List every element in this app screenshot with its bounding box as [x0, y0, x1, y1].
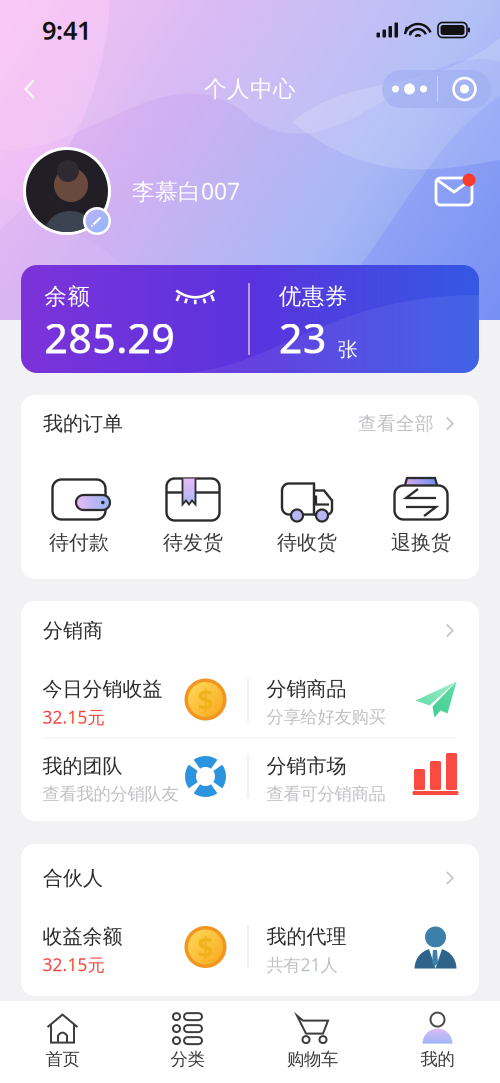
button[interactable]: Back — [8, 67, 52, 111]
staticText: 待付款 — [49, 530, 109, 555]
button[interactable]: 优惠券 — [250, 265, 478, 373]
button[interactable]: 余额 — [22, 265, 248, 373]
staticText: 张 — [338, 337, 358, 362]
staticText: 今日分销收益 — [42, 677, 162, 701]
staticText: 余额 — [44, 283, 90, 310]
button[interactable]: 收益余额 — [20, 909, 247, 985]
staticText: 分类 — [170, 1049, 204, 1070]
staticText: 分销商 — [43, 618, 103, 643]
staticText: 待收货 — [277, 530, 337, 555]
button[interactable]: 分销商品 — [248, 661, 479, 737]
staticText: 我的订单 — [43, 411, 123, 436]
staticText: 查看全部 — [358, 412, 434, 435]
staticText: 购物车 — [287, 1049, 338, 1070]
staticText: 共有21人 — [266, 953, 337, 976]
button[interactable]: 分类 — [125, 1001, 250, 1083]
button[interactable]: 我的代理 — [248, 909, 479, 985]
button[interactable]: 购物车 — [250, 1001, 375, 1083]
staticText: 首页 — [45, 1049, 79, 1070]
staticText: 分享给好友购买 — [266, 706, 385, 728]
button[interactable]: 分销市场 — [248, 738, 479, 814]
staticText: 退换货 — [391, 530, 451, 555]
staticText: 合伙人 — [43, 866, 103, 890]
staticText: 待发货 — [163, 530, 223, 555]
staticText: 23 — [279, 310, 327, 365]
button[interactable]: Messages — [432, 169, 476, 213]
staticText: 收益余额 — [42, 924, 122, 949]
staticText: 32.15元 — [42, 705, 104, 728]
staticText: 285.29 — [44, 310, 175, 365]
button[interactable]: 我的团队 — [20, 738, 247, 814]
button[interactable]: Edit avatar — [22, 146, 112, 236]
button[interactable]: 我的订单 — [21, 400, 479, 454]
staticText: 我的 — [420, 1049, 454, 1070]
staticText: 分销商品 — [266, 677, 346, 701]
staticText: $ — [197, 681, 213, 718]
staticText: 我的团队 — [42, 754, 122, 778]
staticText: 李慕白007 — [132, 176, 240, 206]
staticText: $ — [197, 928, 213, 966]
staticText: 优惠券 — [279, 283, 348, 310]
button[interactable]: 待发货 — [136, 454, 250, 584]
button[interactable]: 今日分销收益 — [20, 661, 247, 737]
button[interactable]: 分销商 — [21, 607, 479, 661]
button[interactable]: More options — [382, 70, 491, 108]
button[interactable]: 我的 — [375, 1001, 500, 1083]
staticText: 查看可分销商品 — [266, 783, 385, 805]
button[interactable]: 待收货 — [250, 454, 364, 584]
button[interactable]: 待付款 — [22, 454, 136, 584]
staticText: 9:41 — [42, 13, 91, 47]
staticText: 我的代理 — [266, 924, 346, 949]
button[interactable]: 首页 — [0, 1001, 125, 1083]
staticText: 个人中心 — [204, 75, 296, 103]
button[interactable]: 退换货 — [364, 454, 478, 584]
button[interactable]: 合伙人 — [21, 855, 479, 909]
staticText: 分销市场 — [266, 754, 346, 778]
staticText: 查看我的分销队友 — [42, 783, 178, 805]
staticText: 32.15元 — [42, 953, 104, 976]
